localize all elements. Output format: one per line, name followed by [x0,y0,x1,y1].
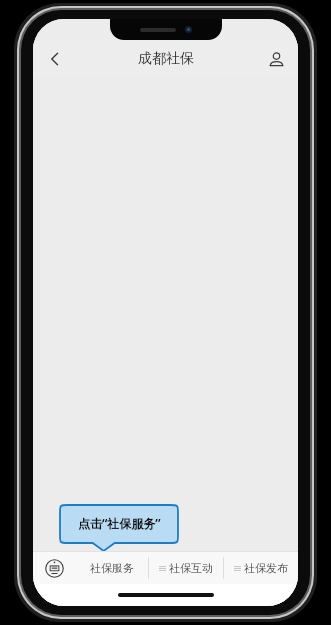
staticText: 社保服务 [90,561,134,575]
button[interactable]: Back [39,43,71,75]
staticText: 社保发布 [244,561,288,575]
staticText: 点击“社保服务” [78,515,161,531]
button[interactable]: Keyboard [33,552,75,584]
button[interactable]: Contact [260,43,292,75]
button[interactable]: 社保互动 [149,552,223,584]
staticText: 社保互动 [169,561,213,575]
button[interactable]: 社保服务 [75,552,148,584]
button[interactable]: 社保发布 [224,552,298,584]
staticText: 成都社保 [138,50,194,68]
